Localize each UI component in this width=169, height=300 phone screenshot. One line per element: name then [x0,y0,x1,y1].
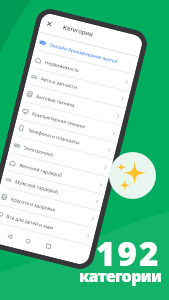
staticText: 192 [96,231,161,276]
staticText: Категории [62,23,94,39]
staticText: Красота и здоровье [10,196,56,214]
staticText: категории [79,265,162,287]
button[interactable]: Онлайн-бронирование жилья [34,32,139,75]
staticText: Телефоны и планшеты [27,127,81,147]
button[interactable]: Все для детей и мам [0,204,96,247]
button[interactable]: Back [1,228,18,245]
button[interactable]: Бытовая техника [21,84,126,126]
button[interactable]: Мужской гардероб [0,169,105,212]
staticText: Мужской гардероб [14,178,60,196]
button[interactable]: Home [20,233,37,250]
button[interactable]: Компьютерная техника [16,101,122,144]
button[interactable]: Close [38,12,144,55]
button[interactable]: Красота и здоровье [0,187,100,229]
staticText: Недвижимость [44,59,81,74]
button[interactable]: Женский гардероб [4,153,109,195]
button[interactable]: Электроника [8,135,113,178]
staticText: Все для детей и мам [6,213,55,232]
button[interactable]: Недвижимость [29,50,135,92]
button[interactable]: Recent apps [40,238,57,255]
staticText: Онлайн-бронирование жилья [48,41,118,65]
staticText: Женский гардероб [18,162,63,179]
staticText: Бытовая техника [36,93,76,109]
button[interactable]: Телефоны и планшеты [12,118,118,160]
staticText: Компьютерная техника [31,110,86,130]
staticText: Авто и запчасти [40,75,79,91]
button[interactable]: Авто и запчасти [25,66,130,109]
other: Close [38,12,60,34]
staticText: Электроника [23,144,55,159]
